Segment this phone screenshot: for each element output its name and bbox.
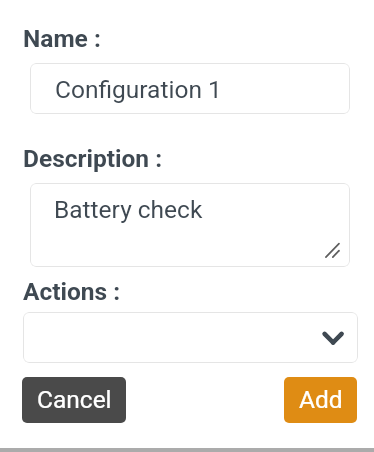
staticText: Cancel bbox=[37, 385, 112, 414]
button[interactable]: Cancel bbox=[22, 377, 126, 423]
button[interactable]: Configuration 1 bbox=[30, 63, 350, 114]
staticText: Add bbox=[299, 385, 343, 414]
staticText: Battery check bbox=[54, 195, 203, 224]
staticText: Actions : bbox=[23, 277, 121, 306]
button[interactable]: Select action bbox=[23, 312, 358, 363]
staticText: Configuration 1 bbox=[55, 75, 222, 104]
staticText: Name : bbox=[23, 24, 101, 53]
button[interactable]: Battery check bbox=[30, 183, 350, 267]
button[interactable]: Add bbox=[284, 377, 357, 423]
staticText: Description : bbox=[23, 144, 163, 173]
